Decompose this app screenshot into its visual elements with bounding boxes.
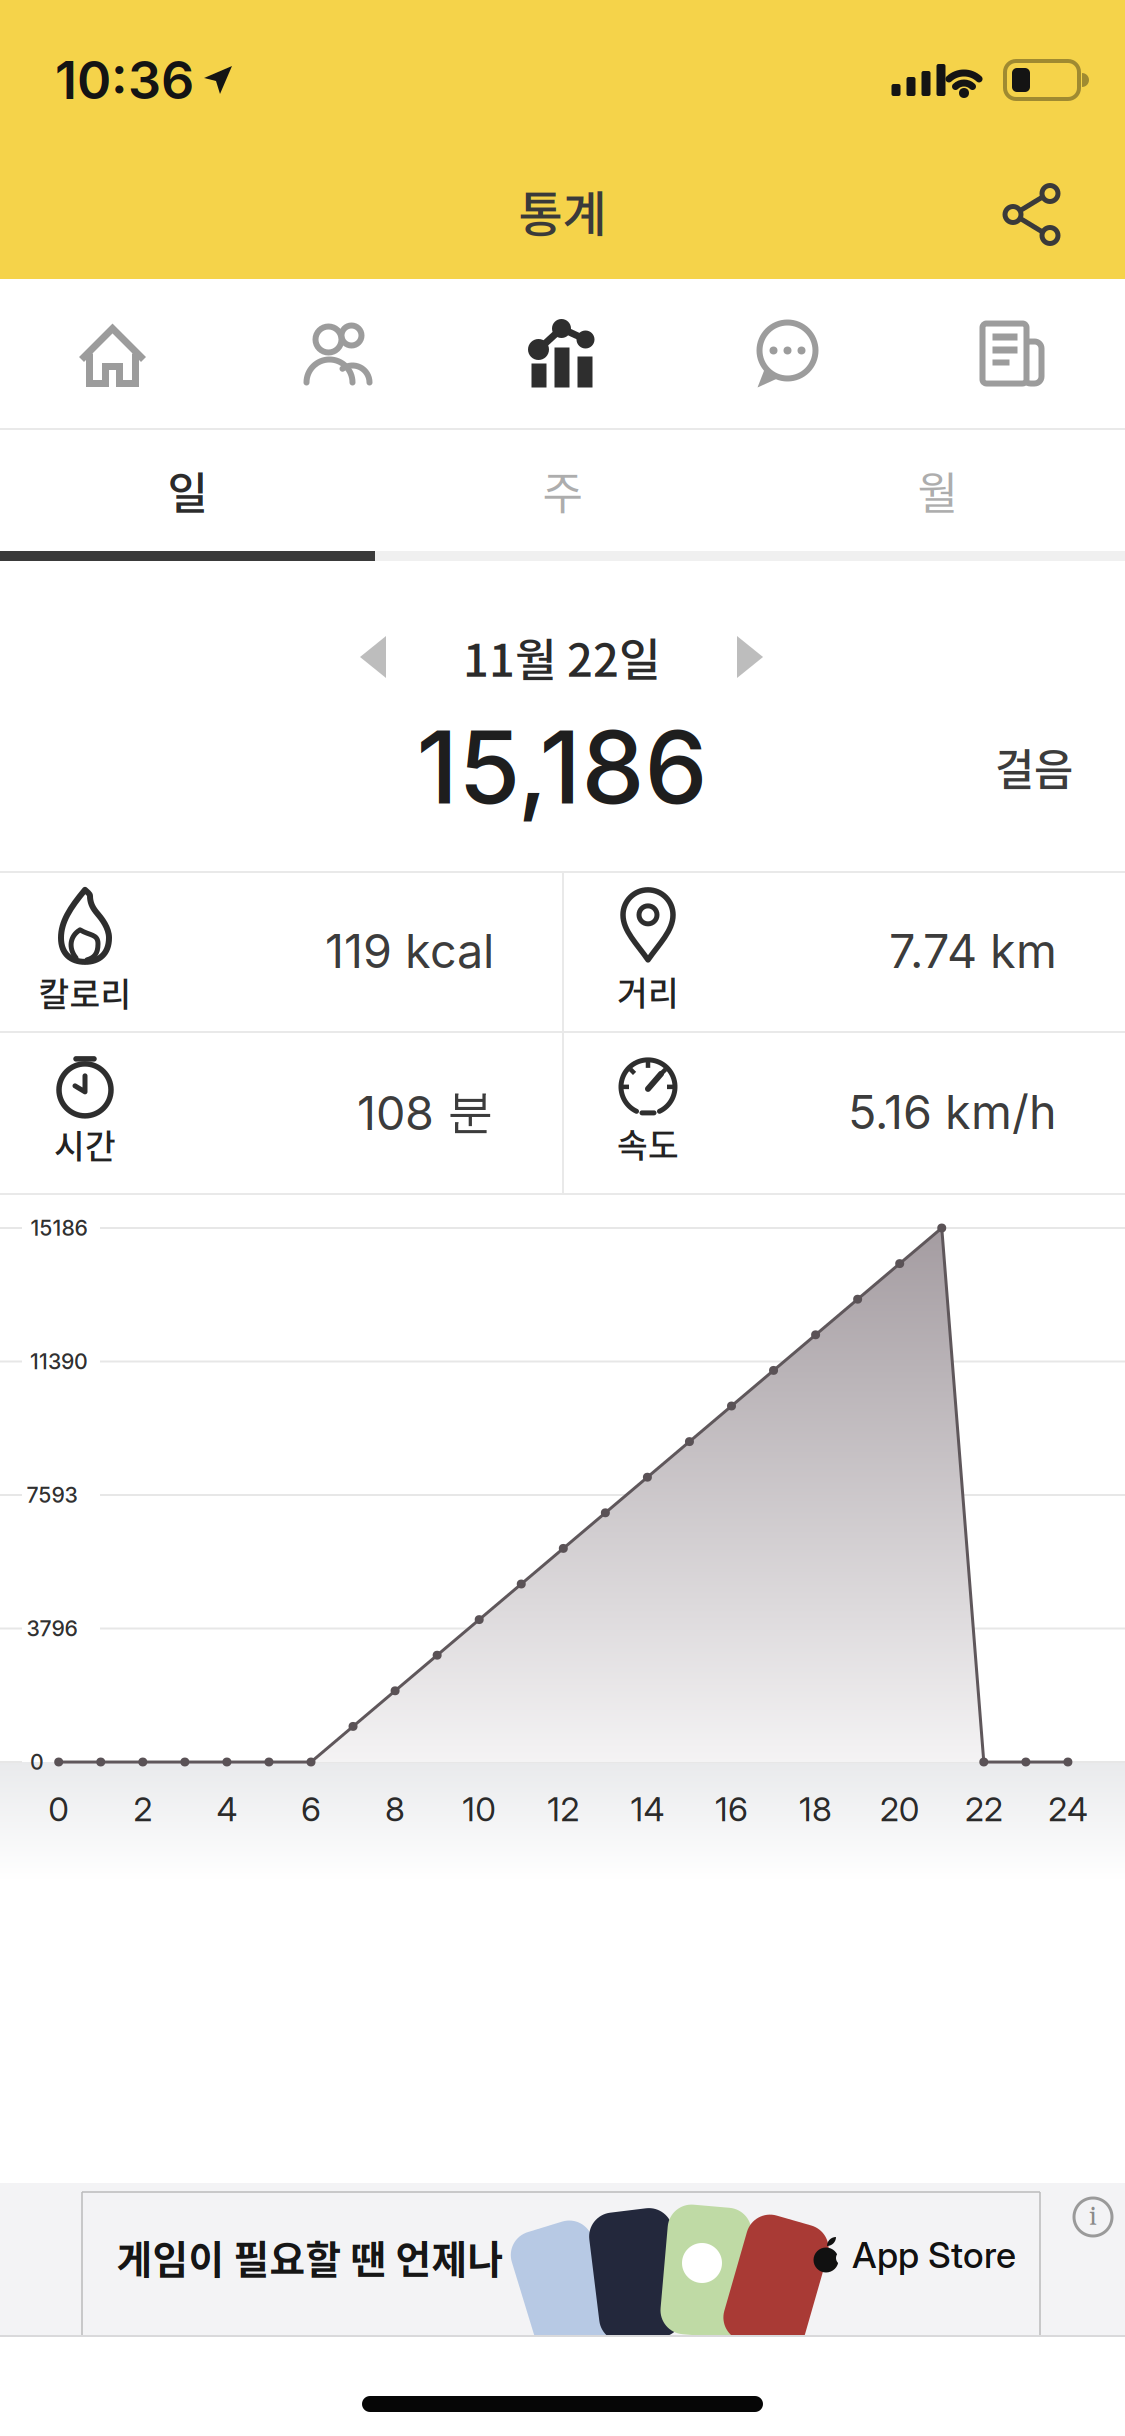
staticText: 108 분 [357, 1083, 494, 1141]
staticText: 8 [385, 1789, 405, 1829]
staticText: 16 [715, 1789, 748, 1829]
staticText: 속도 [617, 1119, 679, 1167]
staticText: 7593 [26, 1482, 77, 1508]
staticText: 0 [48, 1789, 69, 1829]
staticText: 시간 [54, 1120, 116, 1168]
button[interactable]: 월 [750, 430, 1125, 551]
button[interactable]: 주 [375, 430, 750, 551]
staticText: 0 [30, 1749, 44, 1775]
staticText: 거리 [617, 967, 679, 1015]
button[interactable]: 친구 [225, 279, 450, 428]
staticText: 7.74 km [889, 923, 1057, 979]
staticText: 월 [917, 459, 957, 522]
button[interactable]: 광고 정보 [1071, 2195, 1115, 2239]
staticText: 5.16 km/h [848, 1084, 1057, 1140]
button[interactable]: 일 [0, 430, 375, 551]
staticText: 24 [1048, 1789, 1088, 1829]
staticText: 10 [462, 1789, 496, 1829]
staticText: 15186 [30, 1215, 87, 1241]
staticText: 3796 [26, 1616, 77, 1641]
staticText: 20 [880, 1789, 920, 1829]
staticText: 통계 [518, 176, 606, 245]
staticText: 게임이 필요할 땐 언제나 [116, 2229, 503, 2285]
staticText: 2 [133, 1789, 152, 1829]
staticText: 걸음 [995, 736, 1073, 798]
staticText: 18 [799, 1789, 832, 1829]
button[interactable]: 공유 [1004, 184, 1125, 244]
staticText: 칼로리 [38, 968, 131, 1016]
staticText: i [1089, 2200, 1097, 2234]
staticText: 6 [301, 1789, 321, 1829]
button[interactable]: 통계 [450, 279, 675, 428]
button[interactable]: 게임이 필요할 땐 언제나 [81, 2191, 1041, 2335]
staticText: App Store [852, 2233, 1016, 2277]
button[interactable]: 뉴스 [900, 279, 1125, 428]
staticText: 10:36 [55, 48, 194, 111]
staticText: 119 kcal [325, 923, 494, 979]
staticText: 11월 22일 [463, 624, 661, 690]
staticText: 15,186 [416, 706, 707, 827]
button[interactable]: 채팅 [675, 279, 900, 428]
staticText: 4 [216, 1789, 237, 1829]
button[interactable]: 이전 날짜 [340, 616, 406, 698]
staticText: 12 [547, 1789, 579, 1829]
staticText: 일 [167, 459, 207, 522]
staticText: 11390 [30, 1349, 88, 1374]
button[interactable]: 홈 [0, 279, 225, 428]
staticText: 22 [965, 1789, 1003, 1829]
button[interactable]: 다음 날짜 [717, 616, 783, 698]
staticText: 주 [542, 459, 582, 522]
staticText: 14 [630, 1789, 664, 1829]
